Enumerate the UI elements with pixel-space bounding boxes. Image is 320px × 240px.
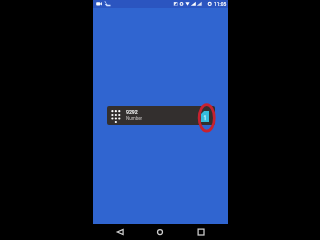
button[interactable]: SIM 1 [201, 111, 209, 122]
staticText: Number [126, 116, 143, 121]
staticText: 11:05 [214, 1, 227, 7]
button[interactable]: Home [155, 227, 165, 237]
staticText: 9292 [126, 109, 138, 115]
button[interactable]: Recents [196, 227, 206, 237]
button[interactable]: 9292 [107, 106, 215, 125]
button[interactable]: Back [115, 227, 125, 237]
